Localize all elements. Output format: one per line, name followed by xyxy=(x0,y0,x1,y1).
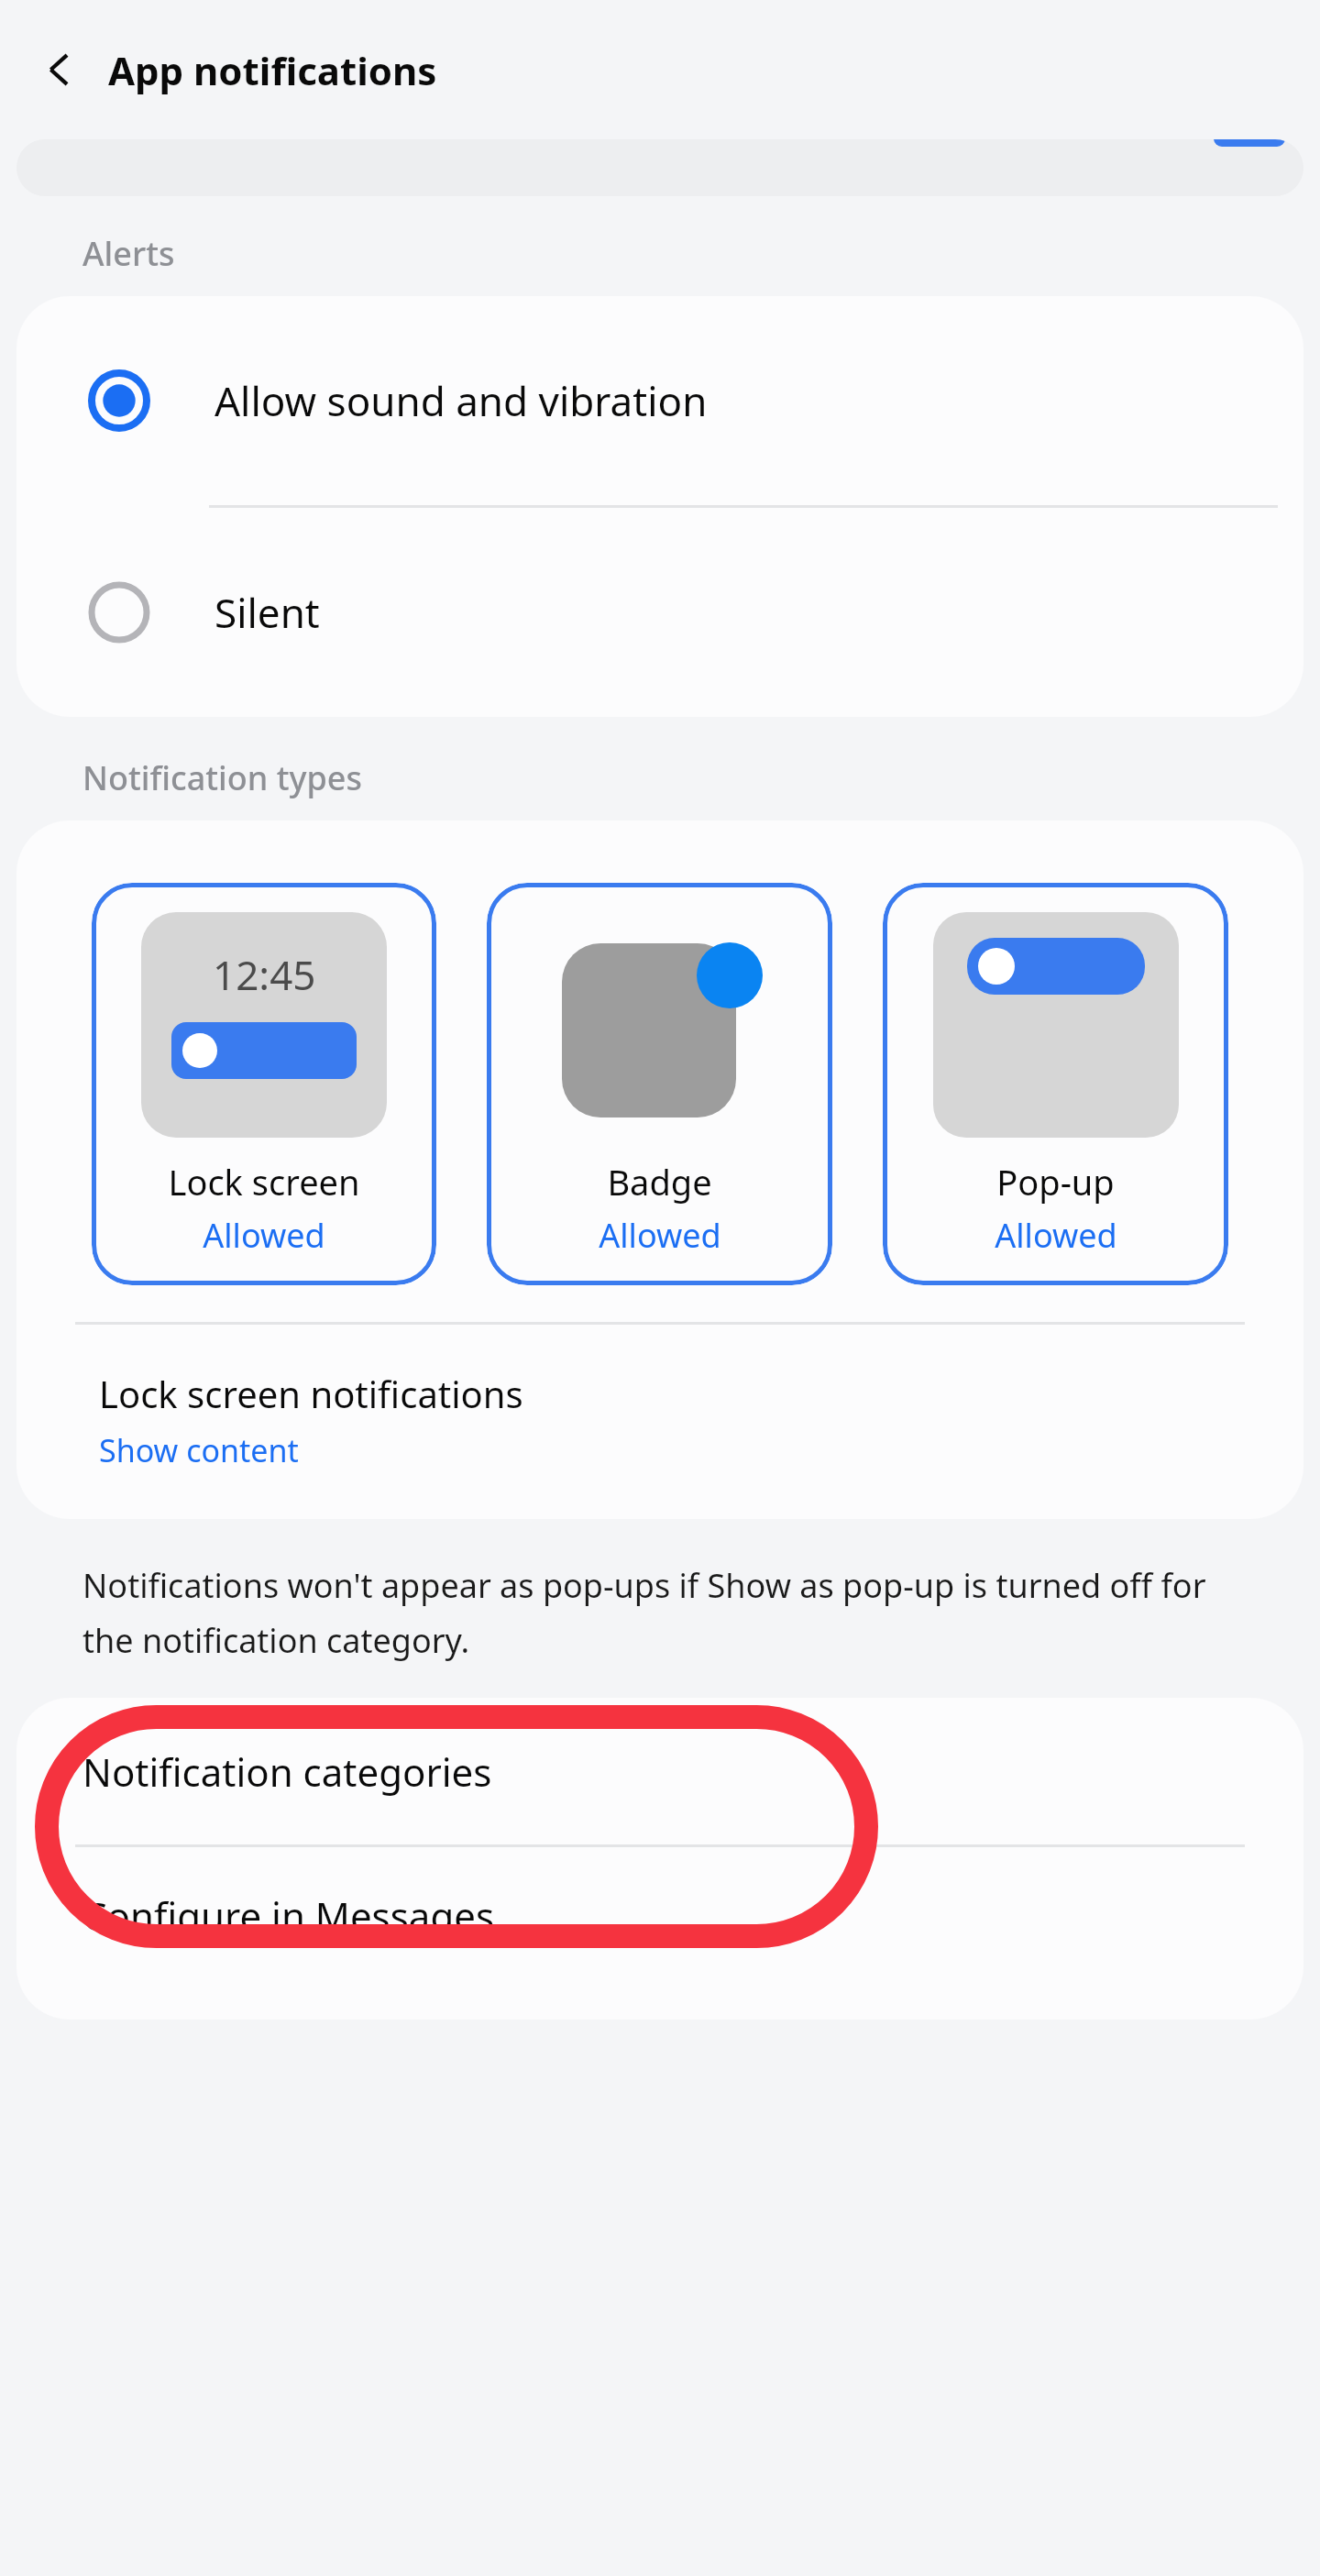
button[interactable]: 12:45 xyxy=(92,883,436,1285)
staticText: 12:45 xyxy=(213,947,316,1002)
staticText: Allow sound and vibration xyxy=(214,373,708,428)
button[interactable]: Pop-up xyxy=(883,883,1228,1285)
button[interactable] xyxy=(16,139,1303,196)
staticText: Configure in Messages xyxy=(82,1889,495,1942)
staticText: Allowed xyxy=(203,1213,325,1258)
button[interactable]: Configure in Messages xyxy=(16,1847,1303,1983)
button[interactable]: Lock screen notifications xyxy=(16,1325,1303,1519)
staticText: Badge xyxy=(607,1158,712,1205)
staticText: Lock screen notifications xyxy=(99,1369,523,1418)
staticText: Silent xyxy=(214,585,320,640)
button[interactable]: Notification categories xyxy=(16,1698,1303,1844)
staticText: Notifications won't appear as pop-ups if… xyxy=(82,1563,1219,1663)
staticText: Notification types xyxy=(82,755,362,800)
staticText: Alerts xyxy=(82,231,175,276)
staticText: Pop-up xyxy=(996,1158,1115,1205)
button[interactable]: Badge xyxy=(487,883,832,1285)
staticText: Allowed xyxy=(599,1213,721,1258)
button[interactable]: Back xyxy=(31,40,90,99)
staticText: Notification categories xyxy=(82,1745,492,1798)
staticText: Lock screen xyxy=(168,1158,360,1205)
button[interactable]: Silent xyxy=(16,508,1303,717)
staticText: Show content xyxy=(99,1429,299,1471)
staticText: App notifications xyxy=(108,44,437,96)
button[interactable]: Allow sound and vibration xyxy=(16,296,1303,505)
staticText: Allowed xyxy=(995,1213,1117,1258)
